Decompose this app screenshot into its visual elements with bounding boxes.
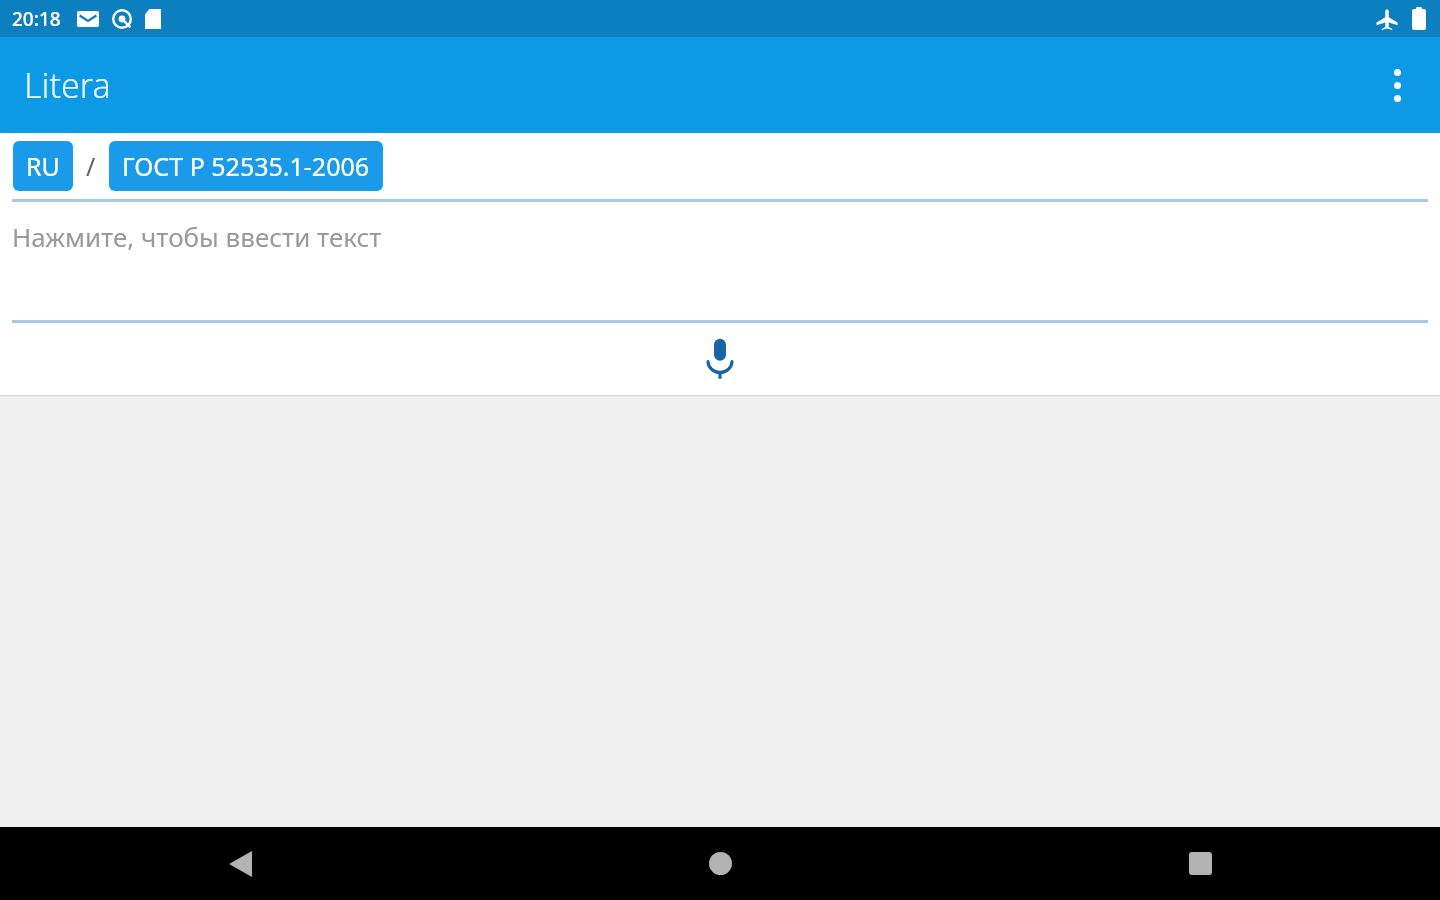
button[interactable]: ГОСТ Р 52535.1-2006 [109,141,383,191]
staticText: ГОСТ Р 52535.1-2006 [122,149,370,183]
button[interactable]: Voice input [689,328,751,390]
staticText: RU [26,149,60,183]
button[interactable]: Home [480,827,960,900]
staticText: 20:18 [12,6,61,32]
button[interactable]: Back [0,827,480,900]
other: Airplane mode [1376,8,1398,30]
staticText: Нажмите, чтобы ввести текст [12,219,382,254]
button[interactable]: Нажмите, чтобы ввести текст [0,202,1440,320]
staticText: / [86,149,96,183]
button[interactable]: RU [13,141,73,191]
other: Battery [1412,7,1426,30]
staticText: Litera [24,62,111,108]
button[interactable]: More options [1368,56,1426,114]
button[interactable]: Recent apps [960,827,1440,900]
